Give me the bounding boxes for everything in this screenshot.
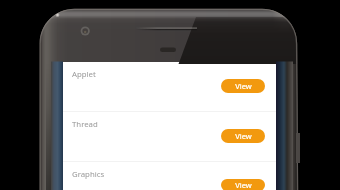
staticText: Thread [72, 119, 98, 130]
button[interactable]: View [221, 129, 265, 143]
button[interactable]: Graphics [63, 162, 276, 190]
button[interactable]: View [221, 79, 265, 93]
staticText: View [235, 81, 252, 91]
staticText: View [235, 131, 252, 141]
staticText: Graphics [72, 169, 105, 180]
staticText: View [235, 180, 252, 190]
staticText: Applet [72, 69, 96, 80]
button[interactable]: View [221, 179, 265, 190]
button[interactable]: Thread [63, 112, 276, 162]
button[interactable]: Applet [63, 62, 276, 112]
